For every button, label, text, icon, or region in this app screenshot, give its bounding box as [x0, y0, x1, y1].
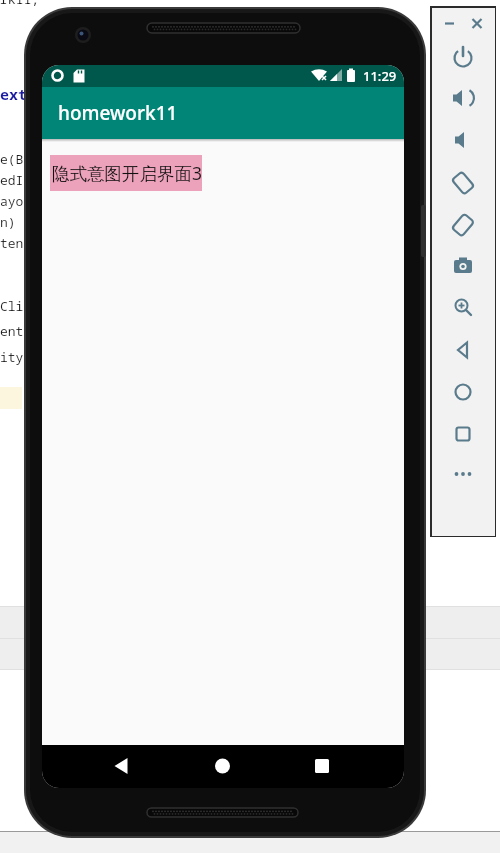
button[interactable]: [448, 292, 478, 322]
staticText: 11:29: [363, 67, 397, 85]
staticText: homework11: [58, 100, 178, 126]
button[interactable]: [306, 750, 338, 782]
button[interactable]: [448, 125, 478, 155]
button[interactable]: 隐式意图开启界面3: [50, 155, 202, 191]
staticText: ent: [0, 322, 24, 340]
staticText: ayo: [0, 192, 24, 210]
button[interactable]: [448, 419, 478, 449]
button[interactable]: [206, 750, 238, 782]
button[interactable]: [105, 750, 137, 782]
button[interactable]: [448, 459, 478, 489]
button[interactable]: [448, 210, 478, 240]
staticText: e(B: [0, 150, 24, 168]
staticText: ity: [0, 348, 24, 366]
button[interactable]: [448, 335, 478, 365]
staticText: edI: [0, 171, 24, 189]
button[interactable]: [448, 168, 478, 198]
button[interactable]: [448, 83, 478, 113]
staticText: ten: [0, 234, 24, 252]
staticText: 2: [417, 318, 424, 333]
button[interactable]: [448, 377, 478, 407]
staticText: Cli: [0, 297, 24, 315]
staticText: n) f: [0, 213, 32, 231]
staticText: ext: [0, 84, 28, 104]
button[interactable]: [448, 251, 478, 281]
staticText: rk11;: [0, 0, 40, 8]
button[interactable]: [448, 43, 478, 73]
staticText: 隐式意图开启界面3: [52, 161, 202, 185]
